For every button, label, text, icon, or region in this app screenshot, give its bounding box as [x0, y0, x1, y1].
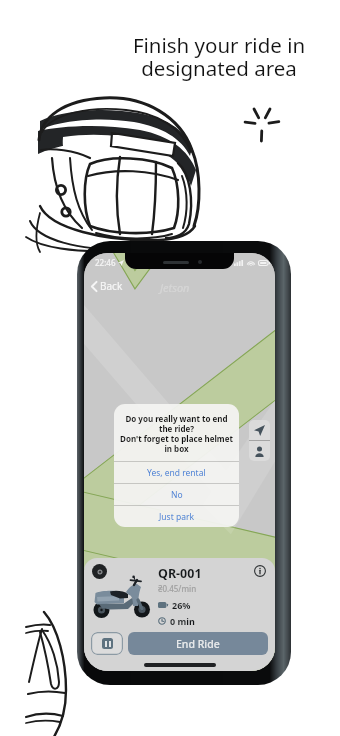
staticText: QR-001	[158, 565, 202, 582]
staticText: 0 min	[170, 615, 195, 627]
button[interactable]: Profile	[249, 441, 270, 461]
button[interactable]: Back	[89, 278, 125, 294]
staticText: Just park	[159, 511, 194, 523]
staticText: ₴0.45/min	[158, 583, 197, 594]
staticText: Yes, end rental	[147, 467, 206, 479]
staticText: Back	[100, 279, 123, 293]
button[interactable]: Yes, end rental	[114, 462, 239, 483]
staticText: Finish your ride in designated area	[99, 31, 339, 82]
button[interactable]: Just park	[114, 506, 239, 527]
staticText: Do you really want to end the ride? Don'…	[117, 413, 236, 454]
button[interactable]: End Ride	[128, 632, 268, 655]
button[interactable]: No	[114, 484, 239, 505]
button[interactable]: Unlock	[92, 564, 107, 579]
button[interactable]: Pause	[91, 632, 123, 655]
staticText: No	[171, 489, 183, 501]
button[interactable]: My location	[249, 420, 270, 440]
button[interactable]: Info	[254, 565, 266, 577]
staticText: 26%	[172, 599, 191, 611]
staticText: Jetson	[160, 280, 190, 295]
staticText: End Ride	[176, 637, 220, 651]
staticText: 22:46	[95, 257, 116, 268]
